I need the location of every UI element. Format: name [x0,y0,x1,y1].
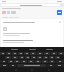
button[interactable]: Key [49,60,55,63]
button[interactable]: Key [21,60,27,63]
button[interactable] [11,11,16,14]
button[interactable]: Key [5,56,11,59]
button[interactable]: Key [0,64,8,67]
button[interactable]: Key [55,64,64,67]
button[interactable]: Key [30,52,36,55]
button[interactable]: Key [0,52,5,55]
button[interactable]: Key [31,56,36,59]
button[interactable]: Key [35,60,41,63]
button[interactable]: Key [56,60,64,63]
button[interactable]: Key [47,64,54,67]
button[interactable]: Key [58,52,64,55]
button[interactable]: Key [49,56,54,59]
button[interactable]: Key [18,52,23,55]
button[interactable]: Key [51,52,57,55]
button[interactable]: Key [28,60,34,63]
button[interactable]: Address bar [1,4,60,6]
button[interactable] [7,11,10,14]
button[interactable]: Key [42,60,48,63]
button[interactable]: Key [6,52,11,55]
button[interactable]: Key [24,52,29,55]
button[interactable]: Key [37,56,42,59]
button[interactable]: Space [17,64,46,67]
button[interactable]: Suggestion [29,49,36,50]
button[interactable]: Key [55,56,60,59]
button[interactable]: Key [43,56,48,59]
button[interactable]: Recents [48,69,50,71]
button[interactable]: Key [9,64,16,67]
button[interactable]: Key [0,60,7,63]
button[interactable]: Expand [59,21,61,23]
button[interactable]: Key [19,56,24,59]
button[interactable]: Key [12,56,18,59]
button[interactable]: Key [14,60,20,63]
button[interactable]: Key [37,52,43,55]
button[interactable]: Key [25,56,30,59]
button[interactable]: Home [31,69,33,71]
button[interactable]: Key [44,52,50,55]
button[interactable]: Key [8,60,13,63]
button[interactable]: Suggestion [46,49,53,50]
button[interactable]: Back [15,69,17,71]
button[interactable]: Key [12,52,17,55]
button[interactable] [2,11,6,14]
button[interactable]: Suggestion [11,49,18,50]
button[interactable]: Primary action [57,10,62,15]
